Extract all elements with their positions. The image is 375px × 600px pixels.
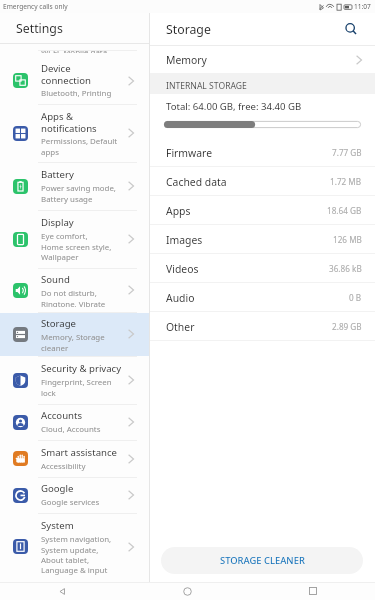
staticText: System: [41, 519, 74, 532]
staticText: Battery: [41, 168, 74, 181]
staticText: Settings: [16, 20, 63, 37]
button[interactable]: Search: [340, 18, 362, 40]
staticText: Display: [41, 216, 74, 229]
staticText: Accounts: [41, 409, 83, 422]
staticText: 2.89 GB: [332, 321, 362, 332]
button[interactable]: Google: [0, 478, 149, 513]
staticText: Security & privacy: [41, 362, 122, 375]
staticText: 11:07: [354, 2, 371, 11]
staticText: 126 MB: [333, 234, 362, 245]
staticText: Power saving mode, Battery usage: [41, 183, 116, 204]
button[interactable]: Firmware: [150, 138, 375, 167]
staticText: 36.86 kB: [329, 263, 362, 274]
staticText: Wi-Fi, Mobile data: [41, 47, 108, 53]
button[interactable]: Apps: [150, 196, 375, 225]
staticText: Total: 64.00 GB, free: 34.40 GB: [166, 100, 302, 113]
staticText: System navigation, System update, About …: [41, 534, 112, 575]
button[interactable]: Recent apps: [250, 582, 375, 600]
button[interactable]: Audio: [150, 283, 375, 312]
staticText: Do not disturb, Ringtone, Vibrate: [41, 288, 106, 307]
staticText: Apps & notifications: [41, 110, 97, 134]
staticText: STORAGE CLEANER: [220, 554, 305, 567]
staticText: Cached data: [166, 175, 227, 189]
staticText: Google: [41, 482, 74, 495]
staticText: Smart assistance: [41, 446, 117, 459]
staticText: Fingerprint, Screen lock: [41, 377, 112, 398]
staticText: Memory, Storage cleaner: [41, 332, 105, 351]
staticText: Memory: [166, 53, 207, 67]
staticText: Cloud, Accounts: [41, 424, 101, 435]
staticText: Device connection: [41, 62, 91, 86]
staticText: 18.64 GB: [327, 205, 362, 216]
staticText: Permissions, Default apps: [41, 136, 118, 157]
button[interactable]: Device connection: [0, 51, 149, 104]
button[interactable]: Home: [125, 582, 250, 600]
button[interactable]: STORAGE CLEANER: [161, 547, 363, 574]
staticText: Bluetooth, Printing: [41, 88, 112, 99]
button[interactable]: Display: [0, 211, 149, 268]
staticText: Videos: [166, 262, 199, 276]
button[interactable]: Sound: [0, 269, 149, 312]
button[interactable]: Images: [150, 225, 375, 254]
staticText: Storage: [41, 317, 76, 330]
staticText: Images: [166, 233, 203, 247]
button[interactable]: Storage: [0, 313, 149, 356]
button[interactable]: Other: [150, 312, 375, 341]
staticText: 7.77 GB: [332, 147, 362, 158]
staticText: Apps: [166, 204, 191, 218]
staticText: 1.72 MB: [330, 176, 362, 187]
button[interactable]: Accounts: [0, 405, 149, 440]
button[interactable]: System: [0, 514, 149, 580]
button[interactable]: Videos: [150, 254, 375, 283]
staticText: Firmware: [166, 146, 213, 160]
staticText: Sound: [41, 273, 70, 286]
staticText: Emergency calls only: [3, 2, 68, 11]
staticText: Google services: [41, 497, 100, 508]
staticText: INTERNAL STORAGE: [166, 80, 247, 92]
button[interactable]: Memory: [150, 46, 375, 73]
staticText: Eye comfort, Home screen style, Wallpape…: [41, 231, 112, 262]
button[interactable]: Security & privacy: [0, 357, 149, 404]
staticText: Accessibility: [41, 461, 86, 472]
button[interactable]: Smart assistance: [0, 441, 149, 477]
staticText: Storage: [166, 21, 211, 38]
staticText: 0 B: [349, 292, 362, 303]
button[interactable]: Apps & notifications: [0, 105, 149, 162]
button[interactable]: Back: [0, 582, 125, 600]
button[interactable]: Battery: [0, 163, 149, 210]
staticText: Audio: [166, 291, 195, 305]
button[interactable]: Cached data: [150, 167, 375, 196]
staticText: Other: [166, 320, 195, 334]
